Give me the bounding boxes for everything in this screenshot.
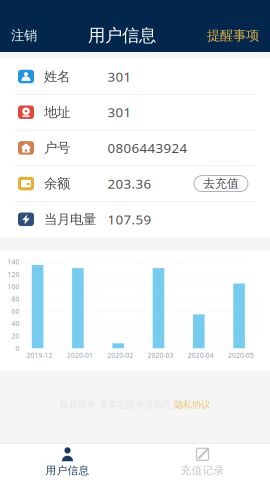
- staticText: 301: [107, 68, 131, 85]
- staticText: 姓名: [44, 68, 70, 85]
- staticText: 用户信息: [45, 464, 89, 477]
- button[interactable]: 去充值: [194, 176, 248, 192]
- button[interactable]: 注销: [0, 19, 48, 52]
- staticText: 120: [8, 270, 20, 279]
- button[interactable]: 用户信息: [0, 444, 135, 480]
- staticText: 0806443924: [107, 139, 187, 157]
- staticText: 2020-05: [228, 351, 254, 360]
- button[interactable]: 充值记录: [135, 444, 270, 480]
- staticText: 2020-01: [67, 351, 93, 360]
- staticText: 0: [16, 344, 20, 353]
- staticText: 203.36: [107, 175, 151, 192]
- button[interactable]: 提醒事项: [196, 19, 270, 52]
- staticText: 20: [12, 331, 20, 340]
- staticText: 2020-04: [188, 351, 214, 360]
- staticText: 充值记录: [180, 464, 224, 477]
- staticText: 100: [8, 282, 20, 291]
- staticText: 版权所有 某某电能管理系统: [60, 399, 171, 410]
- staticText: 用户信息: [88, 25, 156, 46]
- staticText: 2019-12: [27, 351, 53, 360]
- staticText: 140: [8, 258, 20, 266]
- staticText: 40: [12, 319, 20, 328]
- button[interactable]: 隐私协议: [174, 399, 210, 410]
- staticText: 当月电量: [44, 211, 96, 227]
- staticText: 107.59: [107, 210, 151, 228]
- staticText: 户号: [44, 140, 70, 156]
- staticText: 2020-03: [147, 351, 173, 360]
- staticText: 80: [12, 294, 20, 303]
- staticText: 去充值: [203, 176, 239, 191]
- staticText: 60: [12, 307, 20, 316]
- staticText: 注销: [11, 27, 37, 44]
- staticText: 301: [107, 103, 131, 121]
- staticText: 2020-02: [107, 351, 133, 360]
- staticText: 余额: [44, 175, 70, 192]
- staticText: 提醒事项: [207, 27, 259, 44]
- staticText: 隐私协议: [174, 399, 210, 410]
- staticText: 地址: [44, 104, 70, 120]
